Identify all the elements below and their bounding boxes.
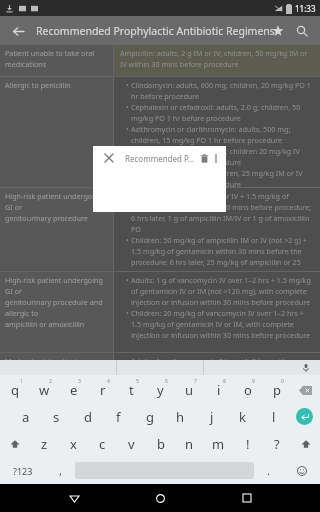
button[interactable]: Shift [291, 430, 320, 457]
staticText: s [53, 408, 60, 426]
button[interactable]: ?123 [0, 457, 46, 484]
button[interactable]: Patient unable to take oral medications [0, 45, 320, 76]
staticText: ! [246, 435, 250, 453]
staticText: . [267, 463, 270, 478]
staticText: 0 [281, 378, 284, 385]
button[interactable]: x [59, 430, 88, 457]
staticText: g [146, 408, 154, 426]
button[interactable]: Enter [289, 403, 320, 430]
button[interactable]: 1 [0, 377, 30, 403]
staticText: • [126, 356, 131, 366]
staticText: k [239, 408, 246, 426]
button[interactable]: Back [61, 485, 87, 511]
button[interactable]: 5 [117, 377, 146, 403]
staticText: j [210, 408, 214, 426]
staticText: Cefazolin: adults, 1.0 g; children, 25 m… [131, 168, 315, 187]
staticText: , [59, 463, 62, 478]
button[interactable]: Favorite [266, 19, 290, 43]
staticText: Adults: 2 g of ampicillin IM or IV + 1.5… [131, 191, 315, 234]
button[interactable]: 3 [59, 377, 88, 403]
button[interactable]: ! [233, 430, 262, 457]
staticText: Children: 20 mg/kg of vancomycin IV over… [131, 308, 315, 340]
staticText: 8 [223, 378, 226, 385]
staticText: t [129, 381, 134, 399]
button[interactable]: Recents [234, 485, 260, 511]
button[interactable]: Allergic to penicillin [0, 77, 320, 187]
staticText: Recommended P… [125, 153, 195, 164]
staticText: • [126, 102, 131, 112]
button[interactable]: 7 [175, 377, 204, 403]
button[interactable]: m [204, 430, 233, 457]
button[interactable]: Emoji [283, 457, 320, 484]
button[interactable]: Home [147, 485, 173, 511]
button[interactable]: Back [6, 19, 30, 43]
staticText: Moderate-risk patient undergoing GI [5, 356, 109, 377]
button[interactable]: Voice input [299, 361, 313, 375]
staticText: 2 [49, 378, 52, 385]
button[interactable]: b [146, 430, 175, 457]
button[interactable]: l [258, 403, 289, 430]
button[interactable]: f [103, 403, 134, 430]
staticText: o [244, 381, 252, 399]
staticText: q [11, 381, 19, 399]
staticText: 11:33 [295, 3, 316, 14]
staticText: v [128, 435, 135, 453]
button[interactable]: Search [290, 19, 314, 43]
button[interactable]: k [227, 403, 258, 430]
staticText: 6 [165, 378, 168, 385]
button[interactable]: a [10, 403, 41, 430]
button[interactable]: s [41, 403, 72, 430]
button[interactable]: Shift [0, 430, 30, 457]
staticText: m [212, 435, 225, 453]
button[interactable]: , [46, 457, 75, 484]
staticText: Clindamycin: adults, 600 mg; children 20… [131, 146, 315, 167]
staticText: • [126, 80, 131, 90]
button[interactable]: 4 [88, 377, 117, 403]
staticText: 9 [252, 378, 255, 385]
staticText: b [157, 435, 165, 453]
staticText: u [185, 381, 194, 399]
staticText: 5 [136, 378, 139, 385]
staticText: w [39, 381, 50, 399]
staticText: 3 [78, 378, 81, 385]
staticText: ?123 [13, 465, 33, 477]
staticText: Recommended Prophylactic Antibiotic Regi… [36, 24, 275, 38]
button[interactable]: 8 [204, 377, 233, 403]
button[interactable]: ? [262, 430, 291, 457]
button[interactable]: 9 [233, 377, 262, 403]
staticText: ? [274, 435, 280, 453]
button[interactable]: z [30, 430, 59, 457]
staticText: • [126, 124, 131, 134]
button[interactable]: c [88, 430, 117, 457]
button[interactable]: 2 [30, 377, 59, 403]
staticText: • [126, 275, 131, 285]
button[interactable]: h [165, 403, 196, 430]
button[interactable]: . [254, 457, 283, 484]
staticText: Adults: 1 g of vancomycin IV over 1–2 hr… [131, 356, 315, 377]
staticText: Adults: 1 g of vancomycin IV over 1–2 hr… [131, 275, 315, 307]
button[interactable]: Moderate-risk patient undergoing GI [0, 353, 320, 383]
staticText: High-risk patient undergoing GI or genit… [5, 191, 109, 223]
staticText: Children: 50 mg/kg of ampicillin IM or I… [131, 235, 315, 271]
button[interactable]: 6 [146, 377, 175, 403]
button[interactable]: 0 [262, 377, 291, 403]
staticText: 7 [194, 378, 197, 385]
button[interactable]: High-risk patient undergoing GI or genit… [0, 188, 320, 271]
staticText: Allergic to penicillin [5, 80, 71, 90]
button[interactable]: j [196, 403, 227, 430]
button[interactable]: High-risk patient undergoing GI or genit… [0, 272, 320, 352]
staticText: n [185, 435, 194, 453]
button[interactable]: Delete [195, 149, 213, 167]
staticText: • [126, 235, 131, 245]
button[interactable]: n [175, 430, 204, 457]
button[interactable]: d [72, 403, 103, 430]
button[interactable]: Backspace [291, 377, 320, 403]
button[interactable]: Close [101, 150, 117, 166]
button[interactable]: g [134, 403, 165, 430]
staticText: z [41, 435, 48, 453]
button[interactable]: v [117, 430, 146, 457]
staticText: Ampicillin: adults, 2 g IM or IV; childr… [120, 48, 315, 69]
